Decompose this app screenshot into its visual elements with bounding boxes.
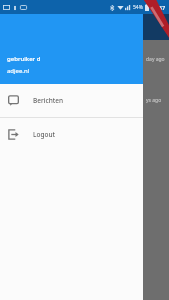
staticText: day ago [146,56,165,63]
button[interactable]: gebruiker d [0,14,143,84]
staticText: Logout [33,130,56,139]
staticText: 54% [133,4,143,11]
staticText: Berichten [33,96,64,105]
button[interactable]: Logout [0,118,143,151]
staticText: ys ago [146,97,162,104]
staticText: adjee.nl [7,67,30,75]
staticText: 16:37 [151,4,166,11]
button[interactable]: Berichten [0,84,143,117]
staticText: gebruiker d [7,55,41,63]
